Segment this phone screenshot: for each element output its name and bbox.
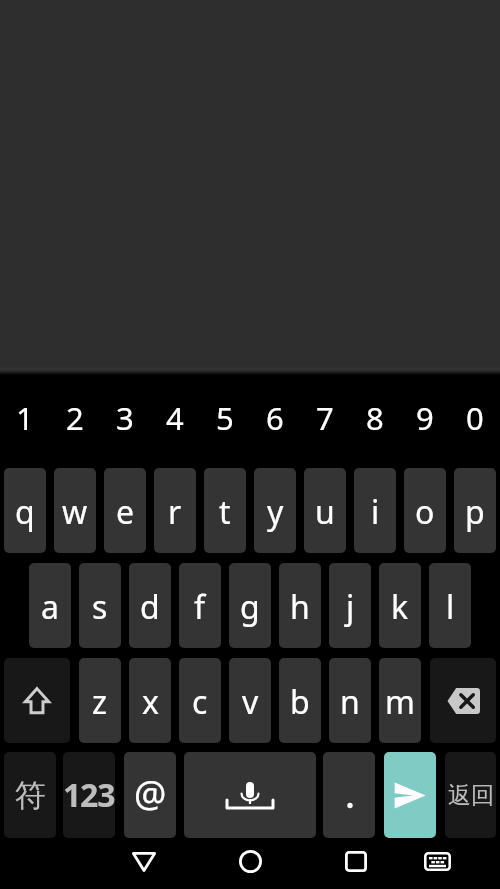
staticText: n	[340, 680, 360, 724]
button[interactable]: Shift	[4, 658, 70, 743]
staticText: @	[134, 769, 167, 818]
staticText: l	[446, 585, 455, 629]
button[interactable]: a	[29, 563, 71, 648]
staticText: v	[242, 680, 259, 724]
staticText: 8	[366, 397, 384, 439]
staticText: p	[465, 490, 485, 534]
staticText: b	[290, 680, 310, 724]
staticText: 123	[63, 773, 115, 817]
button[interactable]: Switch keyboard	[404, 838, 470, 885]
button[interactable]: p	[454, 468, 496, 553]
staticText: m	[385, 680, 415, 724]
button[interactable]: i	[354, 468, 396, 553]
button[interactable]: 5	[200, 383, 250, 453]
staticText: s	[92, 585, 108, 629]
button[interactable]: 9	[400, 383, 450, 453]
staticText: r	[168, 490, 182, 534]
button[interactable]: q	[4, 468, 46, 553]
staticText: z	[92, 680, 108, 724]
button[interactable]: w	[54, 468, 96, 553]
button[interactable]: v	[229, 658, 271, 743]
staticText: c	[192, 680, 208, 724]
button[interactable]: f	[179, 563, 221, 648]
button[interactable]: 6	[250, 383, 300, 453]
staticText: f	[194, 585, 206, 629]
button[interactable]: u	[304, 468, 346, 553]
staticText: i	[371, 490, 380, 534]
button[interactable]: c	[179, 658, 221, 743]
staticText: 3	[116, 397, 134, 439]
button[interactable]: 符	[4, 752, 56, 838]
button[interactable]: l	[429, 563, 471, 648]
button[interactable]: 7	[300, 383, 350, 453]
staticText: 4	[166, 397, 184, 439]
staticText: j	[346, 585, 355, 629]
button[interactable]: @	[124, 752, 176, 838]
button[interactable]: Backspace	[430, 658, 496, 743]
staticText: k	[391, 585, 409, 629]
button[interactable]: 4	[150, 383, 200, 453]
staticText: 7	[316, 397, 334, 439]
button[interactable]: Recent apps	[323, 838, 389, 885]
staticText: 0	[466, 397, 484, 439]
button[interactable]: d	[129, 563, 171, 648]
button[interactable]: o	[404, 468, 446, 553]
button[interactable]: 返回	[445, 752, 496, 838]
button[interactable]: r	[154, 468, 196, 553]
button[interactable]: k	[379, 563, 421, 648]
button[interactable]: Send	[384, 752, 436, 838]
button[interactable]: Home	[217, 838, 283, 885]
button[interactable]: 8	[350, 383, 400, 453]
button[interactable]: 0	[450, 383, 500, 453]
staticText: 符	[15, 776, 46, 815]
staticText: x	[142, 680, 159, 724]
staticText: 5	[216, 397, 234, 439]
staticText: 6	[266, 397, 284, 439]
staticText: g	[240, 585, 260, 629]
button[interactable]: 123	[63, 752, 115, 838]
button[interactable]: j	[329, 563, 371, 648]
staticText: 9	[416, 397, 434, 439]
staticText: d	[140, 585, 160, 629]
button[interactable]: b	[279, 658, 321, 743]
button[interactable]: n	[329, 658, 371, 743]
staticText: a	[41, 585, 59, 629]
staticText: 2	[66, 397, 84, 439]
button[interactable]: y	[254, 468, 296, 553]
staticText: h	[290, 585, 310, 629]
button[interactable]: Space	[184, 752, 316, 838]
button[interactable]: e	[104, 468, 146, 553]
button[interactable]: s	[79, 563, 121, 648]
staticText: o	[415, 490, 435, 534]
button[interactable]: t	[204, 468, 246, 553]
staticText: e	[116, 490, 135, 534]
staticText: q	[15, 490, 35, 534]
staticText: 返回	[448, 781, 494, 810]
staticText: y	[267, 490, 284, 534]
staticText: w	[62, 490, 88, 534]
button[interactable]: 3	[100, 383, 150, 453]
button[interactable]: Back	[111, 838, 177, 885]
staticText: t	[219, 490, 231, 534]
button[interactable]: g	[229, 563, 271, 648]
button[interactable]: m	[379, 658, 421, 743]
button[interactable]: Period	[323, 752, 375, 838]
button[interactable]: h	[279, 563, 321, 648]
button[interactable]: x	[129, 658, 171, 743]
button[interactable]: 2	[50, 383, 100, 453]
button[interactable]: z	[79, 658, 121, 743]
staticText: 1	[16, 397, 34, 439]
staticText: u	[315, 490, 335, 534]
button[interactable]: 1	[0, 383, 50, 453]
